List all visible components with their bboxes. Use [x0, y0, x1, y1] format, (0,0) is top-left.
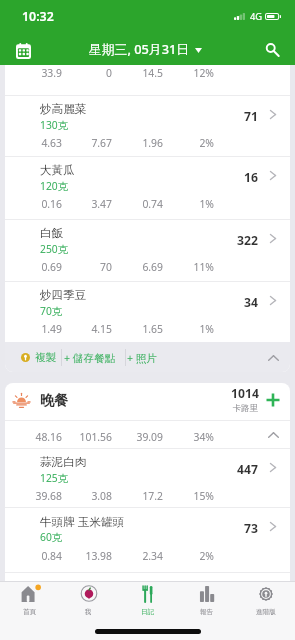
- staticText: 120克: [40, 179, 68, 193]
- staticText: 3.47: [52, 197, 112, 211]
- staticText: 首頁: [23, 608, 37, 616]
- staticText: 17.2: [103, 489, 163, 503]
- staticText: 2.34: [103, 549, 163, 563]
- button[interactable]: + 儲存餐點: [60, 342, 120, 372]
- staticText: 34%: [154, 430, 214, 444]
- staticText: 1.96: [103, 136, 163, 150]
- staticText: 1.65: [103, 322, 163, 336]
- staticText: 2%: [154, 136, 214, 150]
- staticText: 大黃瓜: [40, 163, 75, 178]
- staticText: 星期三, 05月31日: [89, 40, 190, 57]
- button[interactable]: 報告: [177, 581, 236, 618]
- staticText: 447: [198, 461, 258, 478]
- staticText: 1014: [199, 385, 259, 402]
- staticText: 70克: [40, 304, 63, 318]
- staticText: 125克: [40, 471, 68, 485]
- staticText: 0.69: [5, 260, 62, 274]
- staticText: 0: [52, 66, 112, 80]
- button[interactable]: 星期三, 05月31日: [89, 40, 202, 62]
- button[interactable]: Calendar: [9, 36, 38, 65]
- button[interactable]: 白飯: [5, 219, 290, 281]
- staticText: 日記: [141, 608, 155, 616]
- staticText: 34: [198, 294, 258, 311]
- staticText: 322: [198, 232, 258, 249]
- button[interactable]: 48.16: [5, 420, 290, 448]
- staticText: 4G: [250, 10, 263, 23]
- staticText: 12%: [154, 66, 214, 80]
- staticText: 39.68: [5, 489, 62, 503]
- staticText: 1%: [154, 322, 214, 336]
- staticText: 130克: [40, 118, 68, 132]
- staticText: + 儲存餐點: [64, 351, 116, 365]
- staticText: 7.67: [52, 136, 112, 150]
- staticText: 卡路里: [198, 403, 258, 414]
- staticText: 73: [198, 520, 258, 537]
- staticText: 2%: [154, 549, 214, 563]
- staticText: 13.98: [52, 549, 112, 563]
- staticText: 33.9: [5, 66, 62, 80]
- button[interactable]: 進階版: [236, 581, 295, 618]
- button[interactable]: 炒高麗菜: [5, 95, 290, 157]
- staticText: 6.69: [103, 260, 163, 274]
- staticText: 進階版: [256, 608, 276, 616]
- button[interactable]: Add food: [264, 391, 282, 409]
- staticText: 3.08: [52, 489, 112, 503]
- staticText: 複製: [35, 351, 57, 364]
- staticText: 報告: [200, 608, 214, 616]
- staticText: 11%: [154, 260, 214, 274]
- staticText: 蒜泥白肉: [40, 455, 87, 470]
- staticText: 0.74: [103, 197, 163, 211]
- staticText: 71: [198, 108, 258, 125]
- staticText: 白飯: [40, 226, 64, 241]
- button[interactable]: 日記: [118, 581, 177, 618]
- staticText: 60克: [40, 530, 63, 544]
- staticText: 我: [85, 608, 92, 616]
- staticText: 70: [52, 260, 112, 274]
- button[interactable]: 複製: [31, 342, 61, 372]
- staticText: 10:32: [22, 8, 54, 25]
- staticText: 牛頭牌 玉米罐頭: [40, 514, 125, 530]
- staticText: 1%: [154, 197, 214, 211]
- staticText: 101.56: [52, 430, 112, 444]
- staticText: 250克: [40, 242, 68, 256]
- button[interactable]: Collapse: [265, 350, 281, 366]
- staticText: 4.63: [5, 136, 62, 150]
- staticText: 炒高麗菜: [40, 102, 87, 117]
- staticText: 1.49: [5, 322, 62, 336]
- staticText: 14.5: [103, 66, 163, 80]
- staticText: + 照片: [127, 351, 158, 365]
- button[interactable]: + 照片: [123, 342, 162, 372]
- button[interactable]: 牛頭牌 玉米罐頭: [5, 507, 290, 569]
- button[interactable]: Search: [258, 37, 286, 65]
- button[interactable]: Copy meal: [21, 353, 30, 362]
- staticText: 15%: [154, 489, 214, 503]
- button[interactable]: 蒜泥白肉: [5, 448, 290, 510]
- button[interactable]: 晚餐: [5, 383, 290, 420]
- staticText: 16: [198, 169, 258, 186]
- staticText: 晚餐: [40, 392, 68, 410]
- button[interactable]: 大黃瓜: [5, 156, 290, 218]
- staticText: 4.15: [52, 322, 112, 336]
- staticText: 0.16: [5, 197, 62, 211]
- button[interactable]: 我: [59, 581, 118, 618]
- button[interactable]: 炒四季豆: [5, 281, 290, 343]
- staticText: 48.16: [5, 430, 62, 444]
- button[interactable]: 首頁: [0, 581, 59, 618]
- staticText: 39.09: [103, 430, 163, 444]
- staticText: 0.84: [5, 549, 62, 563]
- staticText: 炒四季豆: [40, 288, 87, 303]
